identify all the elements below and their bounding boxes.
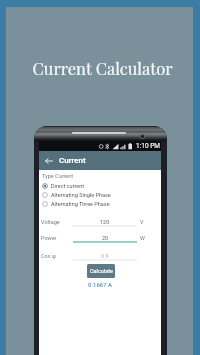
staticText: Type Current [42, 173, 74, 179]
staticText: 120 [100, 219, 110, 225]
button[interactable]: Direct current [39, 181, 161, 190]
button[interactable]: Calculate [87, 264, 115, 278]
staticText: Cos φ [41, 253, 56, 259]
button[interactable]: 0.9 [73, 251, 137, 261]
staticText: 1:10 PM [136, 142, 160, 150]
button[interactable]: Back [39, 151, 161, 170]
staticText: Alternating Three Phase [51, 201, 110, 207]
button[interactable]: 120 [73, 217, 137, 227]
staticText: Calculate [90, 268, 113, 274]
staticText: 0.9 [101, 253, 109, 259]
button[interactable]: Back [42, 154, 55, 167]
button[interactable]: Alternating Single Phase [39, 190, 161, 199]
staticText: Current Calculator [32, 57, 173, 79]
staticText: 0.1667 A [88, 281, 112, 288]
staticText: V [140, 219, 144, 225]
staticText: Direct current [51, 183, 85, 189]
staticText: 20 [102, 235, 109, 241]
staticText: Alternating Single Phase [51, 192, 111, 198]
button[interactable]: 20 [73, 233, 137, 243]
staticText: W [140, 235, 145, 241]
button[interactable]: Alternating Three Phase [39, 199, 161, 208]
staticText: Voltage [41, 219, 60, 225]
staticText: Current [59, 156, 86, 165]
staticText: Power [41, 235, 57, 241]
